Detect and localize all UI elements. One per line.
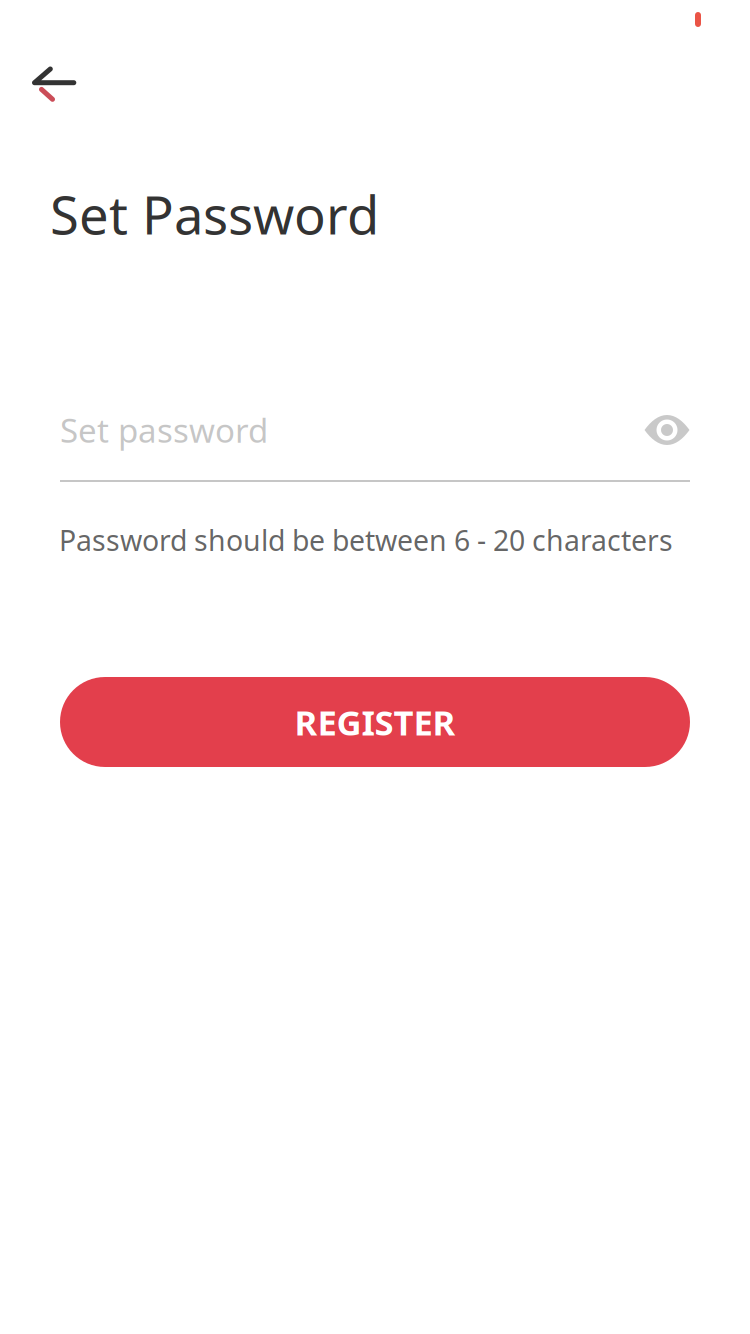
button[interactable]: Show password [624, 403, 690, 457]
staticText: Set Password [50, 178, 379, 250]
staticText: Set password [60, 407, 268, 452]
button[interactable]: REGISTER [60, 677, 690, 767]
staticText: REGISTER [294, 699, 455, 745]
button[interactable]: Back [14, 54, 96, 112]
staticText: Password should be between 6 - 20 charac… [59, 521, 673, 559]
